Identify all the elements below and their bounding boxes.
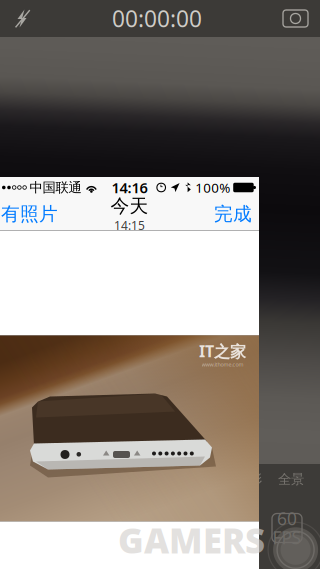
staticText: 60 (277, 507, 297, 530)
button[interactable]: Flash off (0, 8, 38, 28)
staticText: 有照片 (1, 202, 58, 225)
staticText: 慢动作 (84, 471, 123, 487)
staticText: www.ithome.com (201, 361, 243, 368)
staticText: 14:15 (114, 217, 145, 233)
staticText: GAMERS (118, 517, 265, 563)
button[interactable]: 完成 (214, 196, 259, 231)
staticText: 正方形 (223, 471, 262, 487)
staticText: 延时摄影 (16, 471, 68, 487)
staticText: 中国联通 (29, 179, 81, 196)
staticText: 100% (195, 179, 230, 196)
staticText: IT之家 (199, 340, 246, 362)
staticText: FPS (272, 526, 301, 549)
staticText: 全景 (278, 471, 304, 487)
button[interactable]: Switch camera (276, 9, 320, 28)
staticText: 00:00:00 (112, 3, 202, 33)
staticText: 完成 (214, 202, 252, 225)
button[interactable]: 有照片 (0, 196, 58, 231)
staticText: 今天 (110, 195, 148, 217)
staticText: 14:16 (111, 178, 147, 197)
